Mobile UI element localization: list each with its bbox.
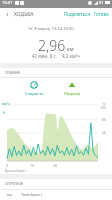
staticText: Готово [94,11,109,17]
staticText: Время (мин.) [5,168,27,173]
staticText: 81 [99,0,104,5]
staticText: Поделиться [64,11,90,17]
button[interactable]: Back [0,8,14,20]
staticText: м [103,101,106,106]
staticText: км [67,46,74,53]
staticText: ОТРЕЗКИ [5,181,23,186]
staticText: 13:41 [2,0,13,5]
staticText: Подъем [64,91,81,97]
staticText: Чт, 8 марта, 13:24-16:00 [28,26,74,31]
staticText: 20 [53,163,57,168]
staticText: Темп(мин.) [21,192,43,197]
staticText: 80 [102,117,106,122]
staticText: 10 [30,163,34,168]
staticText: 60 [102,130,106,135]
staticText: 100 [100,105,106,110]
staticText: Скорость [25,91,44,97]
button[interactable]: Подъем [60,80,84,98]
staticText: км [7,192,13,197]
staticText: 0 [6,163,8,168]
staticText: ХОДЬБА [14,11,34,18]
button[interactable]: Скорость [22,80,46,98]
staticText: 4,2 км/ч [62,53,80,59]
staticText: 2,96 [38,36,66,55]
staticText: 6 [3,110,5,115]
staticText: 42 мин. 8 с. [32,53,57,59]
staticText: ГРАФИК [5,70,21,75]
button[interactable]: Поделиться [62,9,92,19]
button[interactable]: Готово [92,9,112,19]
staticText: км/ч [2,101,10,106]
